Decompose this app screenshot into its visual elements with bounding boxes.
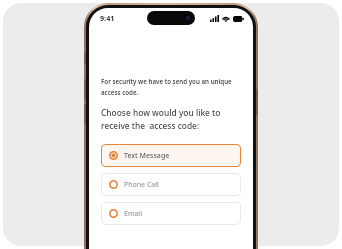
staticText: For security we have to send you an uniq… [101,77,241,97]
staticText: Text Message [124,151,170,161]
staticText: Email [124,209,142,219]
button[interactable]: Email [101,202,241,225]
staticText: Phone Call [124,180,159,190]
button[interactable]: Text Message [101,144,241,167]
button[interactable]: Phone Call [101,173,241,196]
staticText: Choose how would you like to receive the… [101,107,241,131]
staticText: 9:41 [100,13,115,23]
